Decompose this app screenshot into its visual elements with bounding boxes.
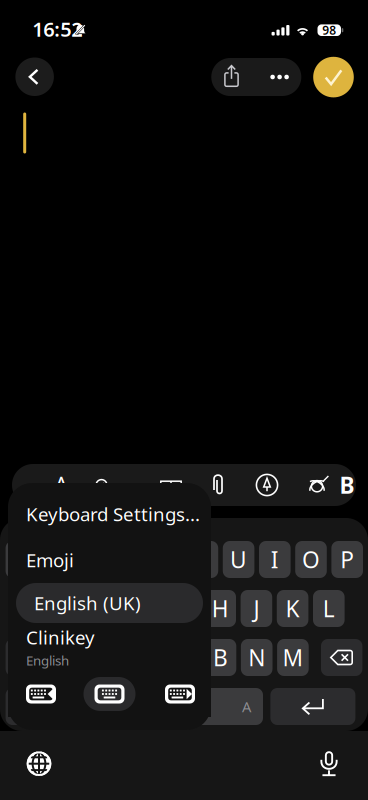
button[interactable]: Done xyxy=(313,57,354,97)
staticText: A xyxy=(242,697,251,716)
button[interactable]: B xyxy=(205,639,236,676)
staticText: K xyxy=(286,593,300,623)
button[interactable]: Previous keyboard xyxy=(19,674,63,714)
button[interactable]: P xyxy=(331,541,363,578)
button[interactable]: G xyxy=(168,590,200,627)
staticText: Clinikey xyxy=(26,625,95,650)
button[interactable]: U xyxy=(223,541,254,578)
button[interactable]: K xyxy=(277,590,308,627)
button[interactable]: H xyxy=(204,590,236,627)
staticText: A xyxy=(54,470,68,500)
button[interactable]: W xyxy=(42,541,73,578)
staticText: 98 xyxy=(322,22,336,38)
staticText: H xyxy=(212,593,229,623)
staticText: M xyxy=(282,642,303,672)
staticText: 16:52 xyxy=(32,16,82,42)
staticText: D xyxy=(103,593,120,623)
button[interactable]: Checklist xyxy=(95,464,125,506)
button[interactable]: Z xyxy=(60,639,91,676)
button[interactable]: N xyxy=(241,639,272,676)
staticText: O xyxy=(302,544,320,574)
button[interactable]: Dictate xyxy=(306,740,352,786)
staticText: J xyxy=(253,593,259,623)
staticText: Emoji xyxy=(26,548,74,572)
button[interactable]: Clinikey xyxy=(8,623,211,671)
button[interactable]: Keyboard xyxy=(83,677,135,711)
button[interactable]: Back xyxy=(15,57,54,96)
staticText: P xyxy=(340,544,354,574)
staticText: Keyboard Settings... xyxy=(26,502,200,526)
staticText: B xyxy=(213,642,228,672)
staticText: N xyxy=(248,642,265,672)
button[interactable]: Return xyxy=(270,688,355,725)
staticText: G xyxy=(175,593,192,623)
button[interactable]: 123 xyxy=(6,688,48,725)
staticText: F xyxy=(142,593,154,623)
button[interactable]: Q xyxy=(6,541,37,578)
button[interactable]: I xyxy=(259,541,291,578)
button[interactable]: J xyxy=(241,590,272,627)
button[interactable]: Delete xyxy=(321,639,362,676)
button[interactable]: Space xyxy=(55,688,263,725)
staticText: Z xyxy=(69,642,82,672)
button[interactable]: Bold xyxy=(334,464,360,506)
button[interactable]: Switch keyboard xyxy=(16,741,62,787)
button[interactable]: More xyxy=(261,58,299,96)
button[interactable]: Table xyxy=(156,464,186,506)
staticText: English (UK) xyxy=(34,591,141,615)
staticText: I xyxy=(271,544,279,574)
staticText: A xyxy=(32,593,46,623)
button[interactable]: M xyxy=(277,639,309,676)
button[interactable]: Attach xyxy=(206,464,236,506)
button[interactable]: O xyxy=(295,541,327,578)
button[interactable]: L xyxy=(313,590,345,627)
button[interactable]: Shift xyxy=(6,639,48,676)
staticText: Q xyxy=(12,544,30,574)
button[interactable]: Text style xyxy=(46,464,76,506)
staticText: English xyxy=(26,651,69,669)
button[interactable]: A xyxy=(23,590,55,627)
button[interactable]: Share xyxy=(214,57,248,95)
button[interactable]: F xyxy=(132,590,164,627)
staticText: B xyxy=(339,470,354,500)
button[interactable]: Keyboard Settings... xyxy=(8,491,211,537)
button[interactable]: Y xyxy=(187,541,218,578)
button[interactable]: Emoji xyxy=(8,537,211,583)
staticText: S xyxy=(69,593,81,623)
button[interactable]: D xyxy=(96,590,127,627)
button[interactable]: Draw xyxy=(252,464,282,506)
staticText: L xyxy=(323,593,335,623)
button[interactable]: Next keyboard xyxy=(158,674,202,714)
button[interactable]: English (UK) xyxy=(8,583,211,623)
button[interactable]: Assist xyxy=(303,464,333,506)
staticText: W xyxy=(47,544,68,574)
staticText: 123 xyxy=(10,693,43,720)
button[interactable]: S xyxy=(60,590,91,627)
staticText: U xyxy=(230,544,247,574)
